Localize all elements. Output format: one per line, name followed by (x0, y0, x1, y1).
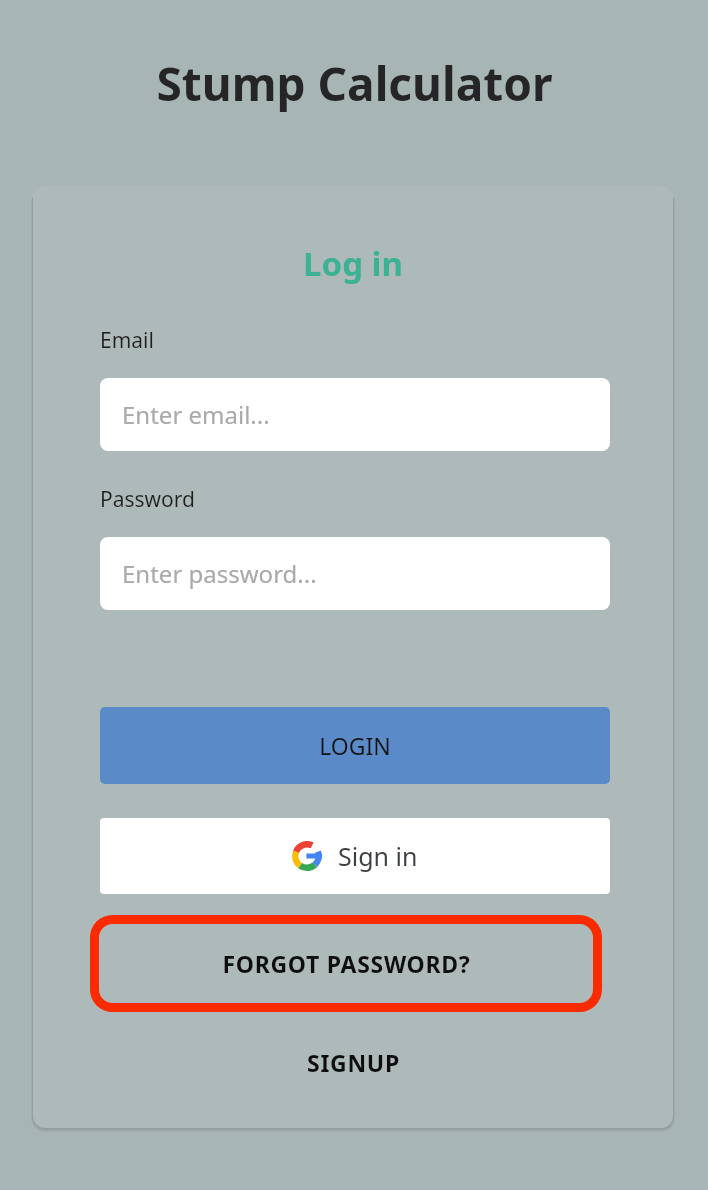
staticText: Stump Calculator (156, 52, 553, 115)
staticText: Enter email... (122, 398, 270, 431)
button[interactable]: SIGNUP (293, 1037, 414, 1088)
staticText: Email (100, 326, 154, 355)
button[interactable]: Enter email... (100, 378, 610, 451)
staticText: Enter password... (122, 557, 317, 590)
staticText: LOGIN (319, 730, 391, 761)
staticText: Sign in (338, 839, 418, 873)
button[interactable]: LOGIN (100, 707, 610, 784)
button[interactable]: FORGOT PASSWORD? (90, 915, 602, 1012)
button[interactable]: Sign in (100, 818, 610, 894)
staticText: Log in (303, 241, 403, 286)
button[interactable]: Enter password... (100, 537, 610, 610)
staticText: FORGOT PASSWORD? (222, 948, 471, 979)
staticText: Password (100, 485, 195, 514)
staticText: SIGNUP (307, 1047, 400, 1078)
